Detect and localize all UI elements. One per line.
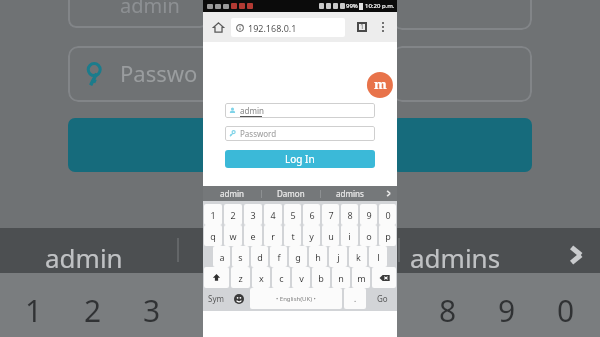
button[interactable]: Log In: [225, 150, 375, 168]
button[interactable]: • English(UK) •: [250, 288, 342, 309]
button[interactable]: r: [264, 225, 282, 246]
button[interactable]: admin: [203, 186, 261, 201]
button[interactable]: l: [369, 246, 387, 267]
staticText: n: [338, 272, 344, 284]
button[interactable]: 1: [204, 204, 222, 225]
staticText: 1: [210, 209, 216, 221]
button[interactable]: Tabs: [353, 18, 371, 36]
button[interactable]: 4: [264, 204, 282, 225]
staticText: t: [291, 230, 295, 242]
button[interactable]: d: [251, 246, 268, 267]
staticText: 9: [498, 290, 516, 331]
staticText: • English(UK) •: [276, 295, 316, 303]
button[interactable]: 0: [379, 204, 396, 225]
staticText: 10:20 p.m.: [365, 2, 395, 10]
staticText: 6: [309, 209, 315, 221]
staticText: Password: [240, 128, 277, 139]
staticText: .: [354, 293, 357, 304]
staticText: c: [279, 272, 284, 284]
staticText: 2: [230, 209, 236, 221]
staticText: 4: [270, 209, 276, 221]
staticText: Log In: [285, 152, 315, 166]
button[interactable]: 9: [360, 204, 377, 225]
button[interactable]: Damon: [262, 186, 320, 201]
staticText: m: [374, 75, 387, 93]
staticText: e: [250, 230, 256, 242]
staticText: f: [277, 251, 281, 263]
staticText: 8: [347, 209, 353, 221]
button[interactable]: 5: [284, 204, 301, 225]
button[interactable]: q: [204, 225, 222, 246]
button[interactable]: Home: [209, 18, 227, 36]
button[interactable]: s: [232, 246, 249, 267]
staticText: 99%: [346, 2, 358, 10]
button[interactable]: j: [329, 246, 347, 267]
staticText: 8: [439, 290, 457, 331]
staticText: 5: [290, 209, 296, 221]
button[interactable]: p: [379, 225, 396, 246]
staticText: 0: [557, 290, 575, 331]
button[interactable]: 192.168.0.1: [231, 18, 345, 37]
button[interactable]: 7: [322, 204, 339, 225]
button[interactable]: c: [272, 267, 290, 288]
button[interactable]: f: [270, 246, 287, 267]
button[interactable]: i: [341, 225, 358, 246]
staticText: admin: [45, 240, 123, 275]
button[interactable]: Sym: [204, 288, 228, 309]
staticText: 192.168.0.1: [248, 22, 297, 34]
staticText: admin: [240, 105, 264, 116]
staticText: v: [299, 272, 304, 284]
button[interactable]: More options: [375, 19, 391, 35]
button[interactable]: Emoji: [230, 288, 248, 309]
staticText: q: [210, 230, 216, 242]
button[interactable]: admin: [225, 103, 375, 118]
button[interactable]: m: [352, 267, 370, 288]
button[interactable]: admins: [321, 186, 379, 201]
button[interactable]: n: [332, 267, 350, 288]
staticText: i: [348, 230, 351, 242]
button[interactable]: b: [312, 267, 330, 288]
staticText: Sym: [208, 293, 224, 304]
button[interactable]: k: [349, 246, 367, 267]
button[interactable]: y: [303, 225, 320, 246]
button[interactable]: h: [309, 246, 327, 267]
staticText: 1: [360, 22, 365, 32]
staticText: admins: [336, 188, 364, 199]
staticText: b: [318, 272, 324, 284]
button[interactable]: More suggestions: [379, 186, 397, 201]
button[interactable]: Go: [368, 288, 396, 309]
button[interactable]: t: [284, 225, 301, 246]
button[interactable]: z: [231, 267, 250, 288]
staticText: admins: [410, 240, 501, 275]
staticText: admin: [120, 0, 180, 19]
staticText: 3: [250, 209, 256, 221]
staticText: u: [328, 230, 334, 242]
button[interactable]: e: [244, 225, 262, 246]
button[interactable]: 8: [341, 204, 358, 225]
staticText: l: [377, 251, 380, 263]
staticText: r: [271, 230, 275, 242]
button[interactable]: .: [344, 288, 366, 309]
staticText: Passwo: [120, 58, 198, 88]
button[interactable]: Backspace: [372, 267, 396, 288]
button[interactable]: a: [213, 246, 230, 267]
button[interactable]: v: [292, 267, 310, 288]
staticText: 1: [25, 290, 43, 331]
button[interactable]: u: [322, 225, 339, 246]
button[interactable]: 3: [244, 204, 262, 225]
button[interactable]: 6: [303, 204, 320, 225]
button[interactable]: Password: [225, 126, 375, 141]
button[interactable]: g: [289, 246, 307, 267]
button[interactable]: 2: [224, 204, 242, 225]
button[interactable]: x: [252, 267, 270, 288]
button[interactable]: Shift: [204, 267, 229, 288]
staticText: k: [356, 251, 361, 263]
button[interactable]: o: [360, 225, 377, 246]
staticText: admin: [220, 188, 244, 199]
staticText: s: [238, 251, 243, 263]
staticText: 0: [385, 209, 391, 221]
staticText: j: [337, 251, 340, 263]
button[interactable]: w: [224, 225, 242, 246]
staticText: h: [315, 251, 321, 263]
staticText: o: [366, 230, 372, 242]
